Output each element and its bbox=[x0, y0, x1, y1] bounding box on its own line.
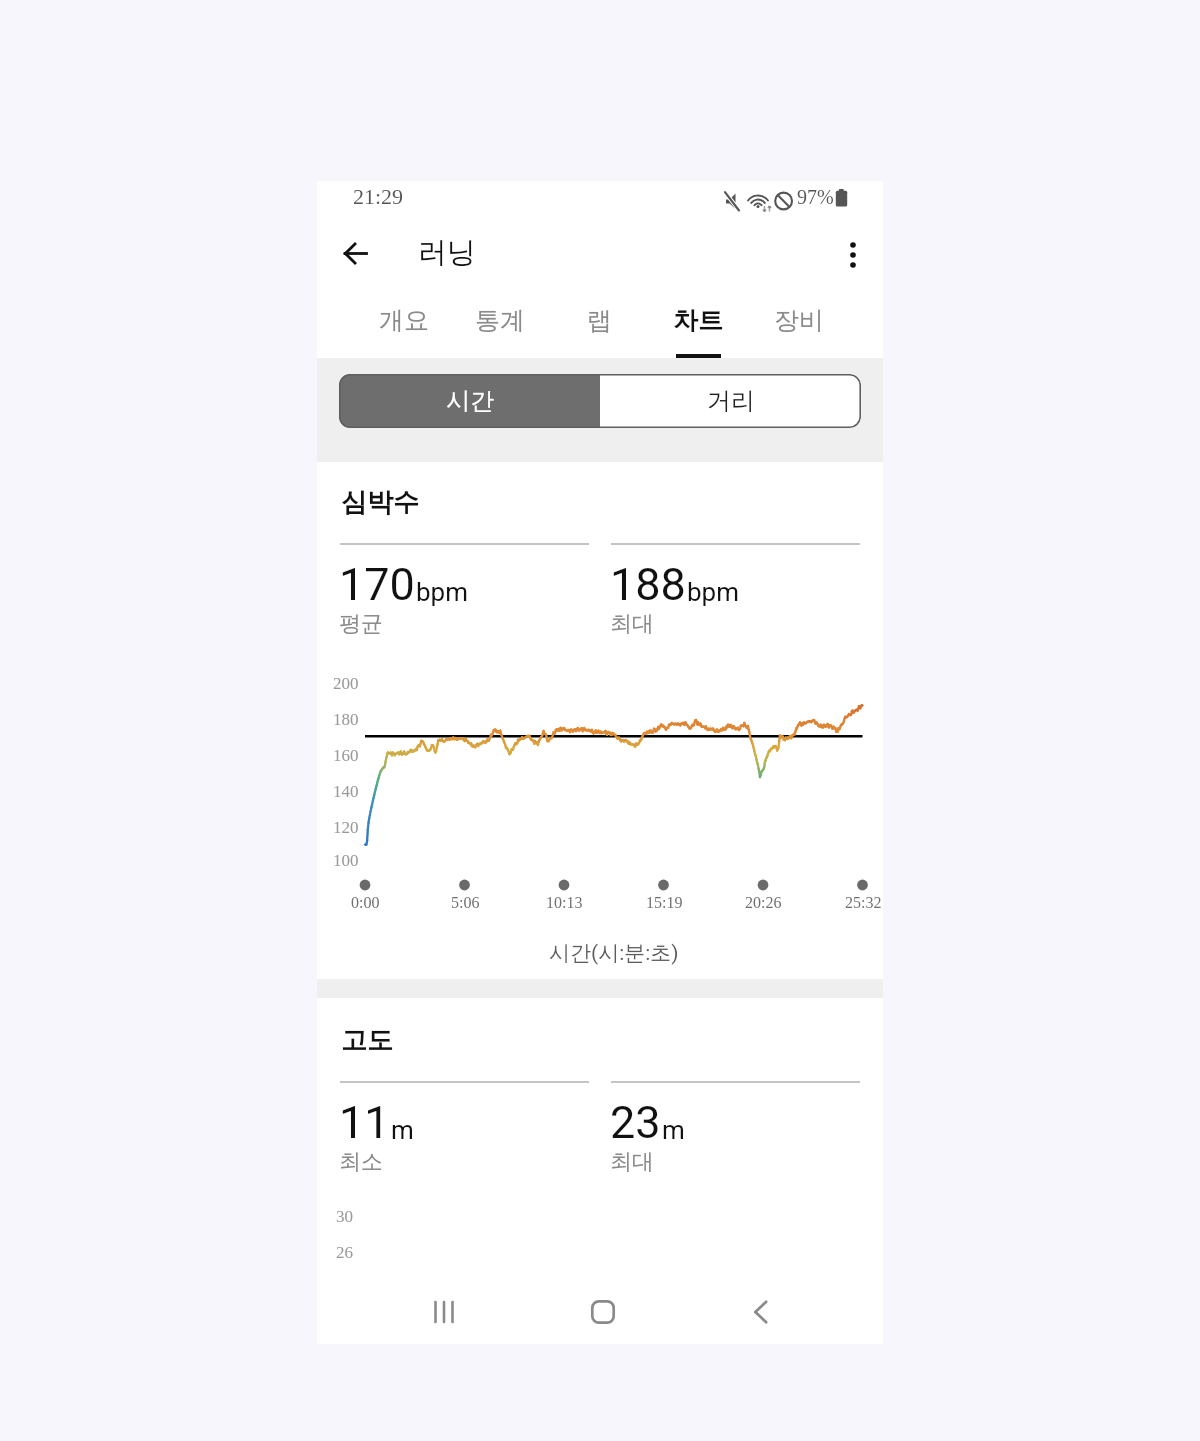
staticText: 140 bbox=[333, 782, 359, 801]
staticText: 차트 bbox=[673, 305, 723, 336]
staticText: 23 bbox=[610, 1096, 661, 1149]
button[interactable]: 차트 bbox=[650, 297, 746, 358]
staticText: 160 bbox=[333, 746, 359, 765]
staticText: 188 bbox=[610, 558, 686, 611]
staticText: 30 bbox=[336, 1207, 353, 1226]
staticText: 러닝 bbox=[418, 234, 476, 271]
button[interactable]: Back bbox=[327, 225, 384, 282]
staticText: 고도 bbox=[341, 1024, 393, 1057]
button[interactable]: Recent apps bbox=[404, 1272, 484, 1352]
staticText: bpm bbox=[416, 577, 468, 607]
button[interactable]: 장비 bbox=[751, 297, 847, 358]
button[interactable]: 시간 bbox=[339, 374, 600, 428]
staticText: 통계 bbox=[475, 305, 525, 336]
staticText: 100 bbox=[333, 851, 359, 870]
button[interactable]: 개요 bbox=[356, 297, 452, 358]
staticText: m bbox=[662, 1115, 685, 1145]
staticText: bpm bbox=[687, 577, 739, 607]
staticText: 시간(시:분:초) bbox=[549, 940, 679, 966]
staticText: 거리 bbox=[707, 386, 755, 416]
staticText: 개요 bbox=[379, 305, 429, 336]
staticText: 최소 bbox=[339, 1148, 383, 1176]
staticText: 최대 bbox=[610, 610, 654, 638]
staticText: 11 bbox=[339, 1096, 390, 1149]
staticText: 25:32 bbox=[845, 894, 882, 912]
staticText: 170 bbox=[339, 558, 415, 611]
staticText: 200 bbox=[333, 674, 359, 693]
button[interactable]: 통계 bbox=[452, 297, 548, 358]
staticText: 0:00 bbox=[351, 894, 380, 912]
staticText: 10:13 bbox=[546, 894, 583, 912]
staticText: 180 bbox=[333, 710, 359, 729]
button[interactable]: 랩 bbox=[551, 297, 647, 358]
staticText: 97% bbox=[797, 186, 834, 208]
button[interactable]: 거리 bbox=[600, 374, 861, 428]
staticText: 26 bbox=[336, 1243, 353, 1262]
staticText: m bbox=[391, 1115, 414, 1145]
staticText: 21:29 bbox=[353, 184, 404, 208]
staticText: 20:26 bbox=[745, 894, 782, 912]
staticText: 최대 bbox=[610, 1148, 654, 1176]
button[interactable]: Back bbox=[721, 1272, 801, 1352]
staticText: 15:19 bbox=[646, 894, 683, 912]
staticText: 랩 bbox=[587, 305, 612, 336]
button[interactable]: Home bbox=[563, 1272, 643, 1352]
staticText: 심박수 bbox=[341, 486, 419, 519]
button[interactable]: More options bbox=[824, 226, 881, 283]
staticText: 장비 bbox=[774, 305, 824, 336]
staticText: 평균 bbox=[339, 610, 383, 638]
staticText: 시간 bbox=[446, 386, 494, 416]
staticText: 120 bbox=[333, 818, 359, 837]
staticText: 5:06 bbox=[451, 894, 480, 912]
